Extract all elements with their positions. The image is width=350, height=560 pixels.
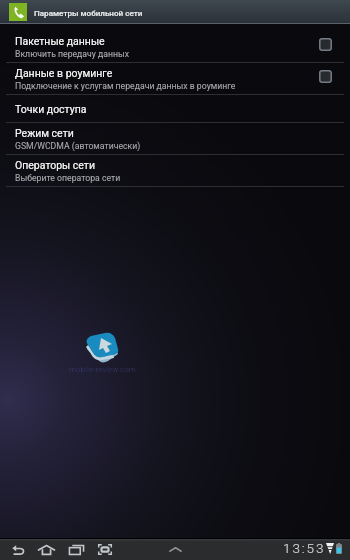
button[interactable]: Точки доступа [0,95,350,122]
button[interactable]: Операторы сети [0,155,350,186]
button[interactable]: App icon [9,3,27,21]
button[interactable]: Home [36,541,56,558]
staticText: Выберите оператора сети [15,173,121,183]
staticText: Подключение к услугам передачи данных в … [15,81,236,91]
staticText: Пакетные данные [15,35,105,47]
staticText: Точки доступа [15,103,87,115]
button[interactable]: Screenshot [95,541,115,558]
staticText: Режим сети [15,127,74,139]
button[interactable]: Recents [66,541,86,558]
staticText: Параметры мобильной сети [34,8,143,17]
staticText: Данные в роуминге [15,67,113,79]
button[interactable]: Режим сети [0,123,350,154]
button[interactable]: Пакетные данные [0,24,350,62]
staticText: Включить передачу данных [15,49,130,59]
button[interactable]: Back [8,541,28,558]
staticText: GSM/WCDMA (автоматически) [15,141,141,151]
staticText: 13:53 [283,540,326,556]
staticText: Операторы сети [15,159,95,171]
button[interactable]: Show notifications [165,542,185,556]
staticText: mobile-review.com [69,365,136,374]
button[interactable]: Данные в роуминге [0,63,350,94]
